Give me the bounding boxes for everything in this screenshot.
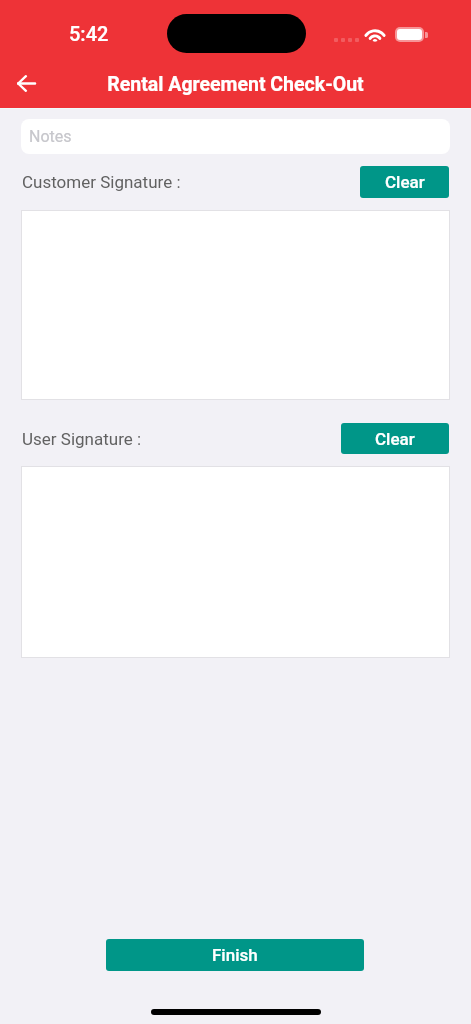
- staticText: 5:42: [69, 22, 109, 45]
- staticText: Rental Agreement Check-Out: [107, 73, 364, 96]
- staticText: Notes: [29, 127, 72, 146]
- button[interactable]: Finish: [106, 939, 364, 971]
- button[interactable]: Clear: [341, 423, 449, 454]
- staticText: Customer Signature :: [22, 172, 181, 192]
- staticText: Clear: [375, 429, 415, 449]
- button[interactable]: [21, 466, 450, 658]
- staticText: User Signature :: [22, 429, 142, 449]
- button[interactable]: Back: [6, 63, 46, 103]
- staticText: Clear: [385, 172, 425, 192]
- button[interactable]: [21, 210, 450, 400]
- button[interactable]: Clear: [360, 166, 449, 198]
- button[interactable]: Notes: [21, 119, 450, 154]
- staticText: Finish: [212, 945, 258, 965]
